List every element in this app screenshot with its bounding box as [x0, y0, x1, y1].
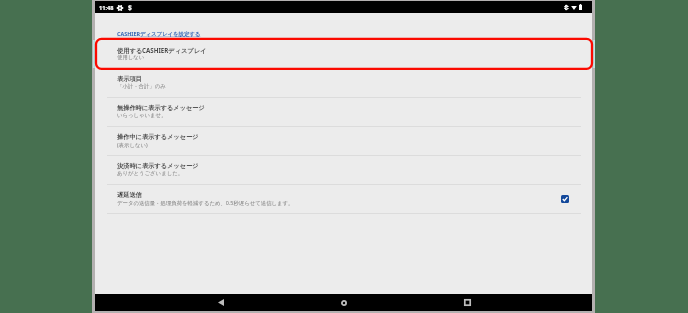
button[interactable]: 表示項目 [95, 69, 592, 98]
button[interactable]: 操作中に表示するメッセージ [95, 127, 592, 156]
button[interactable]: 遅延送信 toggle [561, 195, 569, 203]
staticText: 無操作時に表示するメッセージ [117, 104, 205, 112]
button[interactable]: 無操作時に表示するメッセージ [95, 98, 592, 127]
staticText: 使用しない [117, 54, 145, 61]
staticText: 遅延送信 [117, 191, 142, 199]
button[interactable]: 使用するCASHIERディスプレイ [95, 40, 592, 69]
staticText: データの送信量・処理負荷を軽減するため、0.5秒遅らせて送信します。 [117, 199, 294, 206]
button[interactable]: CASHIERディスプレイを設定する [113, 29, 203, 39]
button[interactable]: Recent apps [458, 294, 476, 311]
staticText: 決済時に表示するメッセージ [117, 162, 199, 170]
staticText: (表示しない) [117, 141, 148, 148]
staticText: 操作中に表示するメッセージ [117, 133, 199, 141]
button[interactable]: Back [212, 294, 230, 311]
staticText: いらっしゃいませ。 [117, 112, 167, 119]
staticText: $ [128, 3, 132, 12]
staticText: CASHIERディスプレイを設定する [117, 30, 201, 37]
staticText: 11:48 [99, 4, 114, 12]
button[interactable]: 遅延送信 [95, 185, 592, 214]
button[interactable]: Home [335, 294, 353, 311]
staticText: 使用するCASHIERディスプレイ [117, 46, 207, 54]
staticText: 「小計・合計」のみ [117, 83, 166, 90]
staticText: 表示項目 [117, 75, 142, 83]
button[interactable]: 決済時に表示するメッセージ [95, 156, 592, 185]
staticText: ありがとうございました。 [117, 170, 184, 177]
